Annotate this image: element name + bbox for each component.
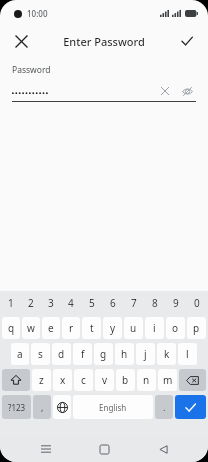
button[interactable]: Confirm — [174, 28, 200, 54]
button[interactable]: y — [103, 317, 122, 339]
button[interactable]: 3 — [41, 291, 61, 315]
button[interactable]: n — [137, 369, 156, 391]
button[interactable]: z — [32, 369, 51, 391]
button[interactable]: m — [158, 369, 177, 391]
button[interactable]: r — [62, 317, 80, 339]
staticText: e — [48, 321, 54, 335]
button[interactable]: d — [52, 343, 71, 365]
button[interactable]: 7 — [123, 291, 144, 315]
button[interactable]: Enter — [175, 395, 206, 419]
staticText: c — [81, 373, 86, 387]
button[interactable]: Shift — [2, 369, 30, 391]
staticText: j — [144, 347, 147, 361]
button[interactable]: g — [94, 343, 113, 365]
staticText: 3 — [48, 296, 54, 310]
staticText: 5 — [89, 296, 95, 310]
button[interactable]: l — [178, 343, 197, 365]
staticText: q — [8, 321, 15, 335]
button[interactable]: o — [166, 317, 185, 339]
button[interactable]: a — [11, 343, 29, 365]
staticText: 6 — [110, 296, 116, 310]
staticText: r — [69, 321, 74, 335]
staticText: g — [100, 347, 107, 361]
button[interactable]: k — [157, 343, 176, 365]
staticText: 2 — [28, 296, 34, 310]
staticText: i — [153, 321, 156, 335]
staticText: x — [60, 373, 66, 387]
staticText: m — [163, 373, 173, 387]
button[interactable]: q — [2, 317, 20, 339]
button[interactable]: 1 — [1, 291, 21, 315]
staticText: w — [27, 321, 35, 335]
button[interactable]: c — [74, 369, 93, 391]
button[interactable]: , — [33, 395, 51, 419]
staticText: a — [17, 347, 23, 361]
button[interactable]: t — [82, 317, 101, 339]
staticText: . — [163, 401, 166, 413]
staticText: v — [102, 373, 108, 387]
staticText: 0 — [194, 296, 200, 310]
button[interactable]: s — [31, 343, 50, 365]
button[interactable]: ?123 — [2, 395, 31, 419]
staticText: s — [38, 347, 43, 361]
button[interactable]: 0 — [186, 291, 207, 315]
staticText: d — [58, 347, 65, 361]
staticText: z — [39, 373, 44, 387]
button[interactable]: Show password — [178, 83, 196, 99]
staticText: o — [172, 321, 179, 335]
button[interactable]: v — [95, 369, 114, 391]
staticText: 7 — [131, 296, 137, 310]
staticText: 9 — [173, 296, 179, 310]
button[interactable]: Recents — [33, 436, 59, 462]
staticText: , — [41, 401, 44, 413]
button[interactable]: 5 — [81, 291, 102, 315]
staticText: 4 — [68, 296, 74, 310]
staticText: Password — [12, 64, 51, 76]
staticText: f — [81, 347, 85, 361]
button[interactable]: Backspace — [179, 369, 206, 391]
staticText: t — [90, 321, 94, 335]
staticText: 10:00 — [27, 8, 48, 19]
button[interactable]: 6 — [102, 291, 123, 315]
button[interactable]: h — [115, 343, 134, 365]
button[interactable]: j — [136, 343, 155, 365]
button[interactable]: e — [42, 317, 60, 339]
staticText: k — [164, 347, 170, 361]
button[interactable]: Back — [150, 436, 176, 462]
button[interactable]: 9 — [165, 291, 186, 315]
button[interactable]: Change language — [53, 395, 71, 419]
staticText: n — [143, 373, 150, 387]
staticText: ?123 — [8, 402, 26, 413]
button[interactable]: Close — [8, 28, 34, 54]
button[interactable]: i — [145, 317, 164, 339]
staticText: u — [130, 321, 137, 335]
staticText: 8 — [152, 296, 158, 310]
button[interactable]: w — [22, 317, 40, 339]
staticText: h — [121, 347, 128, 361]
staticText: English — [99, 402, 127, 413]
button[interactable]: 2 — [21, 291, 41, 315]
button[interactable]: p — [187, 317, 206, 339]
staticText: 1 — [8, 296, 14, 310]
staticText: Enter Password — [63, 34, 145, 49]
button[interactable]: Home — [91, 436, 117, 462]
button[interactable]: Clear — [156, 83, 174, 99]
staticText: y — [110, 321, 116, 335]
button[interactable]: . — [155, 395, 173, 419]
staticText: p — [193, 321, 200, 335]
button[interactable]: 4 — [61, 291, 81, 315]
staticText: b — [122, 373, 129, 387]
staticText: l — [186, 347, 189, 361]
button[interactable]: f — [73, 343, 92, 365]
button[interactable]: b — [116, 369, 135, 391]
button[interactable]: 8 — [144, 291, 165, 315]
button[interactable]: x — [53, 369, 72, 391]
button[interactable]: u — [124, 317, 143, 339]
button[interactable]: English — [73, 395, 153, 419]
